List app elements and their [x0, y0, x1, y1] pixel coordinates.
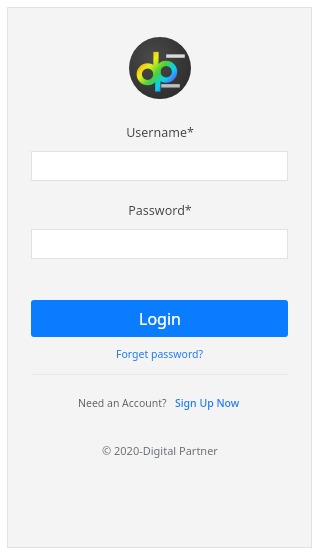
- other: Digital Partner logo: [129, 37, 191, 99]
- staticText: © 2020-Digital Partner: [102, 443, 218, 458]
- button[interactable]: Forget password?: [112, 346, 208, 362]
- button[interactable]: Sign Up Now: [173, 395, 242, 411]
- button[interactable]: Login: [31, 300, 288, 337]
- staticText: Login: [139, 308, 181, 330]
- staticText: Need an Account?: [78, 396, 167, 410]
- staticText: Username*: [126, 124, 194, 141]
- staticText: Password*: [128, 202, 192, 219]
- staticText: Forget password?: [116, 347, 204, 361]
- staticText: Sign Up Now: [175, 396, 240, 410]
- button[interactable]: [31, 151, 288, 181]
- button[interactable]: [31, 229, 288, 259]
